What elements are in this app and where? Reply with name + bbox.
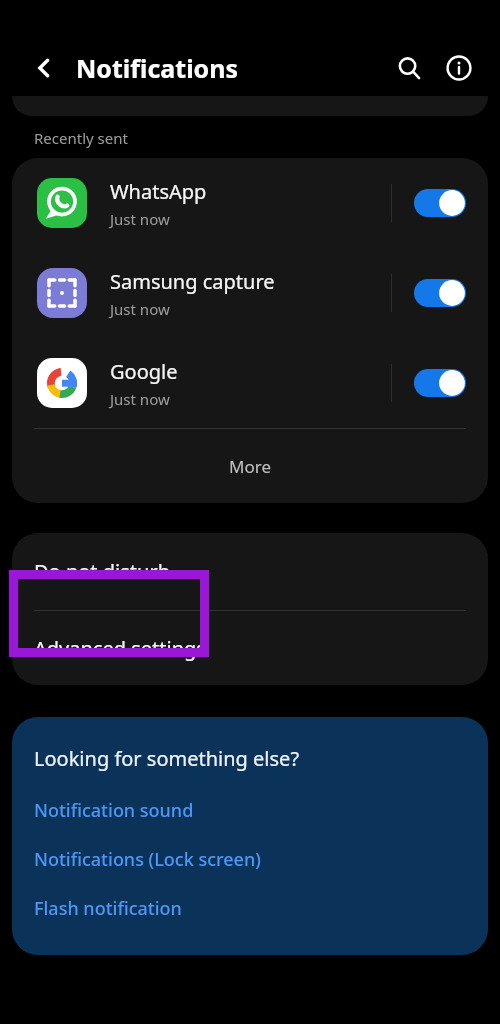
staticText: Advanced settings	[34, 635, 206, 662]
staticText: Just now	[110, 299, 170, 319]
button[interactable]: Back	[20, 44, 68, 92]
staticText: Flash notification	[34, 896, 182, 921]
staticText: Notifications (Lock screen)	[34, 847, 261, 872]
staticText: Recently sent	[34, 128, 128, 148]
staticText: Do not disturb	[34, 558, 170, 585]
staticText: Just now	[110, 389, 170, 409]
button[interactable]: Search	[386, 45, 432, 91]
button[interactable]: Toggle Samsung capture notifications	[392, 248, 488, 338]
button[interactable]: More	[12, 429, 488, 503]
staticText: Google	[110, 358, 178, 385]
staticText: Just now	[110, 209, 170, 229]
button[interactable]: WhatsApp	[12, 158, 488, 248]
staticText: More	[229, 455, 271, 478]
staticText: Samsung capture	[110, 268, 275, 295]
staticText: Looking for something else?	[34, 745, 300, 772]
staticText: Notification sound	[34, 798, 194, 823]
button[interactable]: Do not disturb	[12, 533, 488, 610]
button[interactable]: Notifications (Lock screen)	[34, 847, 261, 872]
staticText: WhatsApp	[110, 178, 207, 205]
button[interactable]: Flash notification	[34, 896, 182, 921]
button[interactable]: Information	[436, 45, 482, 91]
button[interactable]: Samsung capture	[12, 248, 488, 338]
button[interactable]: Advanced settings	[12, 611, 488, 685]
button[interactable]: Toggle Google notifications	[392, 338, 488, 428]
button[interactable]: Notification sound	[34, 798, 194, 823]
button[interactable]: Google	[12, 338, 488, 428]
staticText: Notifications	[76, 51, 239, 85]
button[interactable]: Toggle WhatsApp notifications	[392, 158, 488, 248]
